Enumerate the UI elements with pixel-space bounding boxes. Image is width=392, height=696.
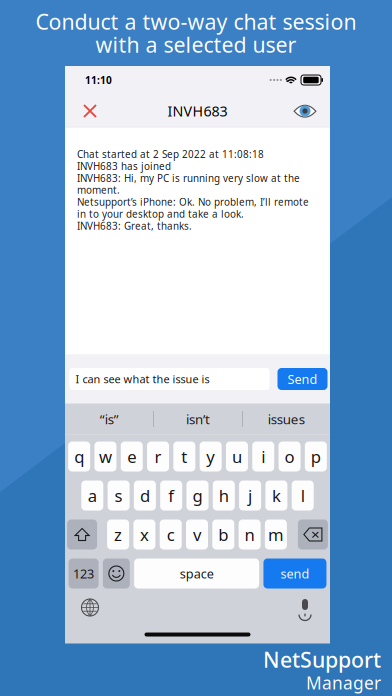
button[interactable]: send	[263, 558, 326, 588]
staticText: moment.	[77, 183, 120, 197]
staticText: v	[193, 523, 201, 546]
button[interactable]: u	[226, 441, 248, 471]
button[interactable]: q	[68, 441, 90, 471]
staticText: 123	[73, 565, 94, 582]
staticText: a	[88, 484, 97, 507]
staticText: INVH683	[167, 101, 227, 121]
staticText: h	[219, 484, 229, 507]
staticText: c	[167, 523, 175, 546]
staticText: e	[127, 445, 136, 468]
staticText: 11:10	[85, 73, 112, 87]
staticText: y	[206, 445, 215, 468]
button[interactable]: View	[288, 95, 322, 127]
button[interactable]: p	[305, 441, 327, 471]
staticText: f	[168, 484, 174, 507]
button[interactable]: y	[200, 441, 222, 471]
staticText: s	[115, 484, 123, 507]
staticText: space	[180, 565, 214, 582]
button[interactable]: n	[239, 519, 261, 549]
button[interactable]: Change keyboard	[75, 594, 105, 620]
staticText: INVH683 has joined	[77, 159, 171, 173]
staticText: “is”	[100, 410, 119, 428]
button[interactable]: m	[265, 519, 287, 549]
button[interactable]: j	[239, 480, 261, 510]
staticText: k	[272, 484, 281, 507]
button[interactable]: r	[147, 441, 169, 471]
staticText: Send	[287, 370, 317, 388]
staticText: u	[232, 445, 242, 468]
button[interactable]: l	[292, 480, 314, 510]
staticText: send	[280, 565, 309, 582]
button[interactable]: z	[107, 519, 129, 549]
button[interactable]: f	[160, 480, 182, 510]
button[interactable]: c	[160, 519, 182, 549]
staticText: Chat started at 2 Sep 2022 at 11:08:18	[77, 147, 264, 161]
staticText: INVH683: Great, thanks.	[77, 219, 192, 232]
button[interactable]: s	[108, 480, 130, 510]
staticText: INVH683: Hi, my PC is running very slow …	[77, 171, 300, 185]
staticText: g	[192, 484, 202, 507]
staticText: l	[301, 484, 305, 507]
button[interactable]: Delete	[298, 519, 328, 549]
staticText: issues	[268, 410, 305, 428]
staticText: r	[155, 445, 162, 468]
staticText: x	[140, 523, 149, 546]
staticText: w	[99, 445, 112, 468]
button[interactable]: w	[94, 441, 116, 471]
staticText: p	[311, 445, 321, 468]
staticText: q	[74, 445, 84, 468]
staticText: d	[140, 484, 150, 507]
staticText: I can see what the issue is	[75, 372, 209, 386]
staticText: o	[285, 445, 295, 468]
staticText: i	[261, 445, 265, 468]
staticText: b	[218, 523, 228, 546]
button[interactable]: Shift	[67, 519, 97, 549]
button[interactable]: Send	[277, 368, 327, 390]
button[interactable]: x	[133, 519, 155, 549]
staticText: m	[268, 523, 284, 546]
staticText: with a selected user	[95, 30, 296, 59]
button[interactable]: h	[213, 480, 235, 510]
staticText: Manager	[306, 671, 381, 695]
button[interactable]: Dictate	[290, 594, 320, 620]
button[interactable]: t	[173, 441, 195, 471]
staticText: n	[245, 523, 255, 546]
button[interactable]: Emoji	[103, 558, 130, 588]
button[interactable]: e	[121, 441, 143, 471]
button[interactable]: v	[186, 519, 208, 549]
button[interactable]: Close chat	[73, 95, 107, 127]
staticText: in to your desktop and take a look.	[77, 207, 244, 221]
button[interactable]: 123	[69, 558, 99, 588]
button[interactable]: i	[252, 441, 274, 471]
staticText: Netsupport’s iPhone: Ok. No problem, I’l…	[77, 195, 309, 209]
staticText: t	[181, 445, 187, 468]
button[interactable]: g	[186, 480, 208, 510]
button[interactable]: k	[265, 480, 287, 510]
button[interactable]: a	[81, 480, 103, 510]
staticText: NetSupport	[263, 645, 381, 674]
button[interactable]: space	[134, 558, 259, 588]
staticText: z	[114, 523, 122, 546]
button[interactable]: o	[279, 441, 301, 471]
button[interactable]: d	[134, 480, 156, 510]
staticText: j	[248, 484, 252, 507]
button[interactable]: b	[212, 519, 234, 549]
staticText: Conduct a two-way chat session	[35, 7, 356, 36]
staticText: isn’t	[186, 410, 210, 428]
